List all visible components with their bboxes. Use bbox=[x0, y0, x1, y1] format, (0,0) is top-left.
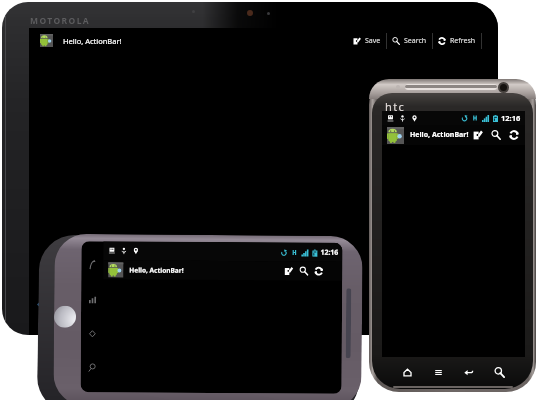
staticText: htc bbox=[385, 99, 406, 114]
button[interactable]: Save bbox=[281, 266, 296, 275]
other: Menu bbox=[433, 367, 444, 378]
other: Home bbox=[402, 367, 413, 378]
button[interactable]: Refresh bbox=[311, 267, 326, 276]
button[interactable]: Back bbox=[34, 298, 47, 311]
button[interactable]: Refresh bbox=[505, 130, 523, 140]
other: Refresh bbox=[438, 37, 446, 45]
staticText: Save bbox=[365, 36, 381, 46]
other: Save bbox=[473, 130, 483, 140]
staticText: Hello, ActionBar! bbox=[129, 265, 184, 275]
other: Search bbox=[392, 37, 400, 45]
staticText: Hello, ActionBar! bbox=[63, 36, 122, 46]
staticText: 12:16 bbox=[320, 248, 338, 258]
other: Back bbox=[87, 259, 98, 270]
button[interactable]: Search bbox=[88, 363, 97, 372]
button[interactable]: Save bbox=[469, 130, 487, 140]
staticText: Refresh bbox=[450, 36, 476, 46]
button[interactable]: Home bbox=[88, 329, 97, 338]
staticText: 12:16 bbox=[501, 113, 521, 123]
other: Refresh bbox=[314, 267, 323, 276]
button[interactable]: Refresh bbox=[433, 31, 481, 51]
other: Search bbox=[491, 130, 501, 140]
other: Search bbox=[494, 367, 505, 378]
other: Menu bbox=[88, 295, 97, 304]
other: Back bbox=[463, 367, 474, 378]
staticText: Hello, ActionBar! bbox=[410, 130, 469, 140]
button[interactable]: Search bbox=[296, 266, 311, 276]
button[interactable]: Save bbox=[348, 31, 386, 51]
other: Save bbox=[284, 266, 293, 275]
button[interactable]: Back bbox=[87, 259, 98, 270]
other: Search bbox=[88, 363, 97, 372]
other: Search bbox=[299, 266, 308, 276]
other: Refresh bbox=[509, 130, 519, 140]
button[interactable]: Menu bbox=[88, 295, 97, 304]
button[interactable]: Search bbox=[487, 130, 505, 140]
other: Save bbox=[353, 37, 361, 45]
button[interactable]: Search bbox=[387, 31, 432, 51]
staticText: Search bbox=[404, 36, 427, 46]
staticText: MOTOROLA bbox=[30, 15, 91, 27]
other: Home bbox=[88, 329, 97, 338]
other: Back bbox=[34, 298, 47, 311]
